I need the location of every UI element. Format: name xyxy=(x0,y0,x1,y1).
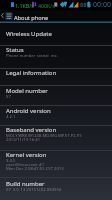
button[interactable]: Android version xyxy=(0,106,112,125)
staticText: Wireless Update xyxy=(6,30,52,38)
staticText: user@linux-user #1 xyxy=(6,162,45,166)
staticText: 4.2.1 xyxy=(6,114,16,118)
staticText: Build number xyxy=(6,180,45,188)
staticText: 00:00 xyxy=(93,0,111,10)
staticText: Baseband version xyxy=(6,126,57,134)
staticText: About phone xyxy=(14,14,49,22)
staticText: 400K/s xyxy=(38,2,55,9)
button[interactable]: Build number xyxy=(0,178,112,200)
staticText: X7_3.0_13 20131202-084954 xyxy=(6,187,62,191)
staticText: Phone number, signal, etc. xyxy=(6,53,58,57)
staticText: Legal information xyxy=(6,69,57,77)
staticText: Model number xyxy=(6,87,48,95)
staticText: Kernel version xyxy=(6,151,47,159)
staticText: 1.1KB/s xyxy=(15,2,34,9)
button[interactable]: Legal information xyxy=(0,69,112,85)
staticText: Mon Dec 2 08:47:55 CST 2013 xyxy=(6,166,64,170)
button[interactable]: Navigate up xyxy=(0,10,13,21)
button[interactable]: Kernel version xyxy=(0,151,112,177)
staticText: 3.4.5 xyxy=(6,158,16,162)
staticText: Android version xyxy=(6,107,51,115)
button[interactable]: Model number xyxy=(0,86,112,105)
staticText: MOLY.WR8.W1248.MD.WG.MP.V7.P2.P3, xyxy=(6,133,83,137)
staticText: Status xyxy=(6,46,24,54)
staticText: X7 xyxy=(6,94,11,98)
button[interactable]: Status xyxy=(0,46,112,68)
button[interactable]: Baseband version xyxy=(0,126,112,150)
staticText: 2013/11/19 16:41 xyxy=(6,137,41,141)
button[interactable]: Wireless Update xyxy=(0,23,112,45)
staticText: 88% xyxy=(80,1,92,9)
